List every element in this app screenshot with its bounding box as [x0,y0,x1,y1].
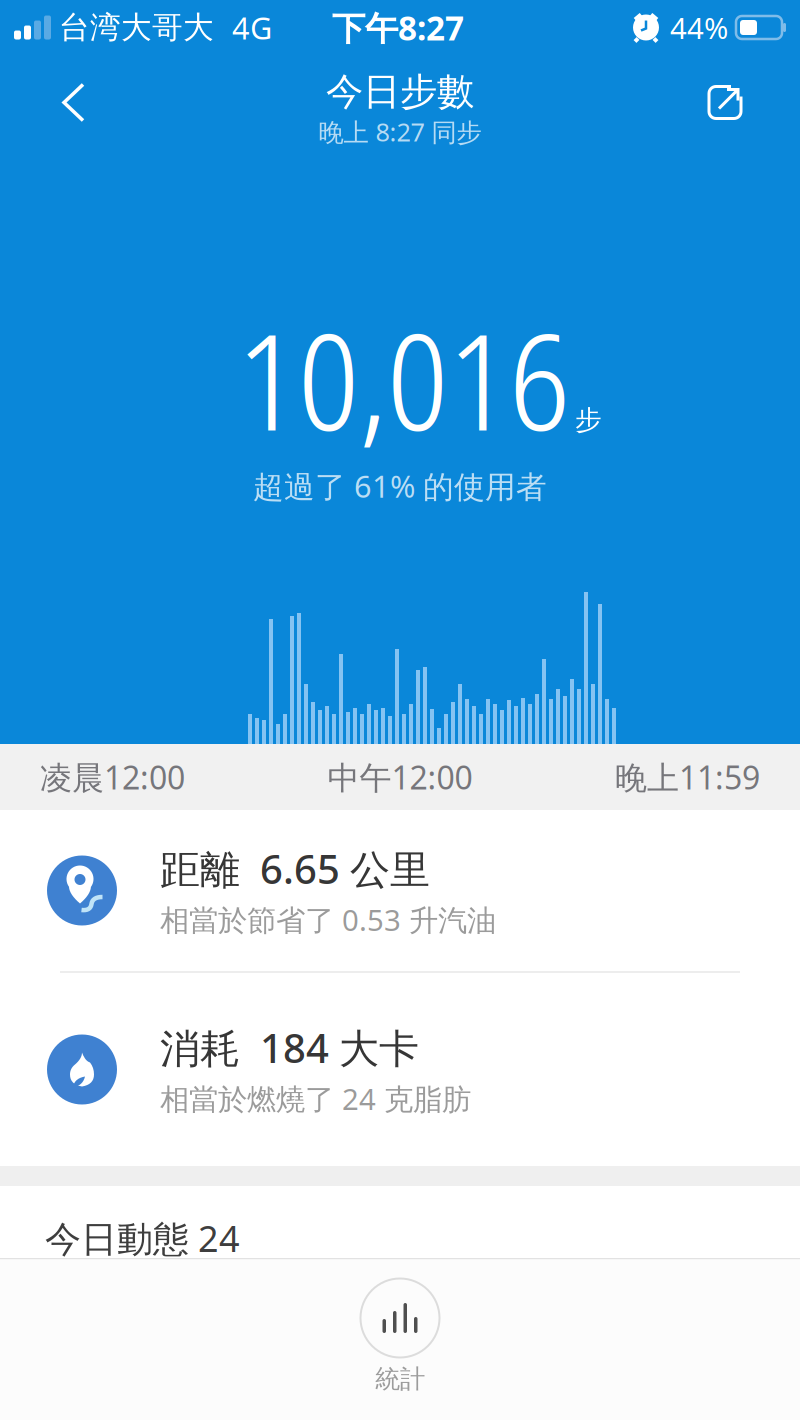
staticText: 中午12:00 [327,756,472,798]
button[interactable]: 分享 [707,84,800,120]
staticText: 相當於節省了 0.53 升汽油 [160,900,496,939]
staticText: 晚上 8:27 同步 [318,115,481,148]
staticText: 44% [670,8,728,47]
staticText: 凌晨12:00 [40,756,185,798]
staticText: 相當於燃燒了 24 克脂肪 [160,1079,471,1118]
staticText: 4G [232,7,272,48]
staticText: 10,016 [237,288,570,470]
staticText: 台湾大哥大 [59,9,214,46]
staticText: 步 [575,404,602,437]
staticText: 消耗 184 大卡 [160,1021,419,1074]
staticText: 今日動態 24 [45,1214,240,1262]
staticText: 統計 [375,1363,425,1395]
button[interactable]: 統計 [360,1259,439,1395]
staticText: 距離 6.65 公里 [160,842,430,895]
staticText: 超過了 61% 的使用者 [253,466,547,506]
staticText: 下午8:27 [332,5,464,50]
button[interactable]: 返回 [0,82,85,122]
staticText: 晚上11:59 [615,756,760,798]
staticText: 今日步數 [326,69,474,115]
